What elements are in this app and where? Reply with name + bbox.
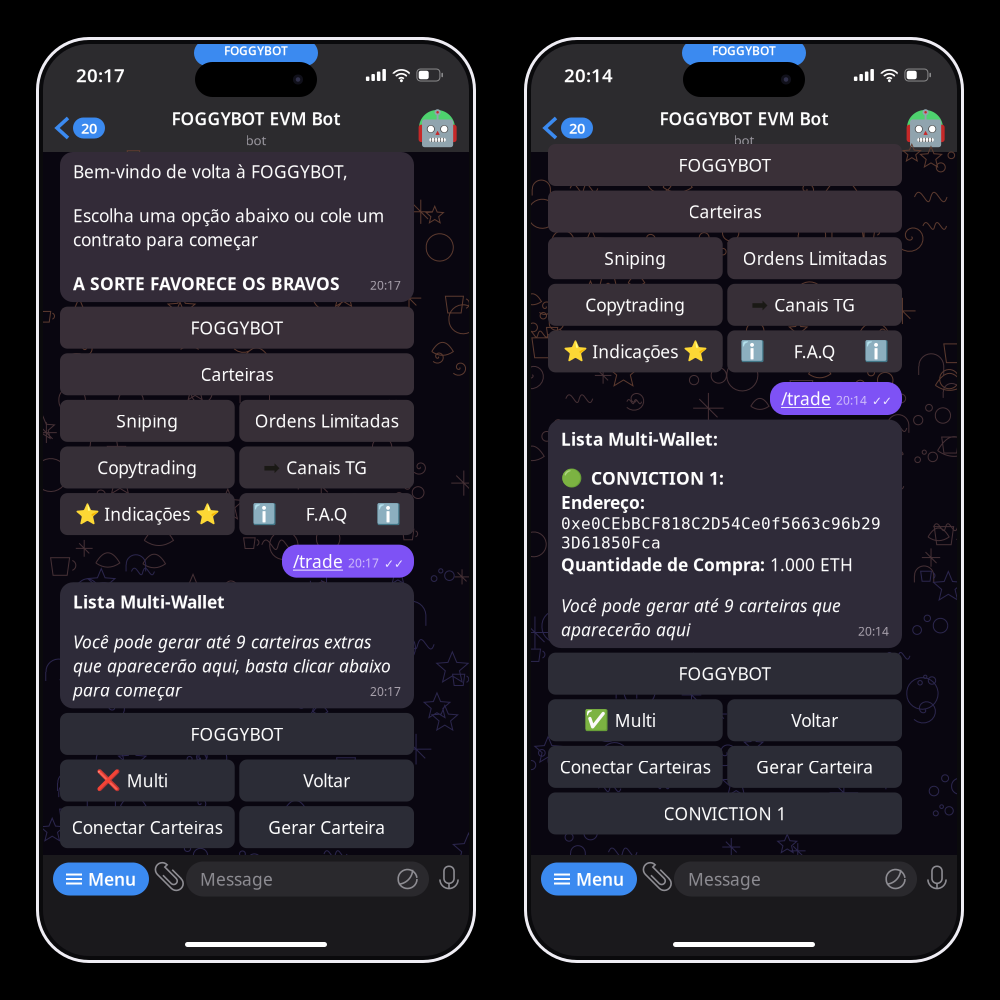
staticText: aparecerão aqui (561, 618, 690, 641)
button[interactable]: Ordens Limitadas (239, 400, 414, 442)
button[interactable]: Attach file (149, 866, 186, 892)
staticText: ℹ️ (376, 503, 401, 525)
button[interactable]: Indicações (60, 493, 235, 535)
staticText: que aparecerão aqui, basta clicar abaixo (73, 654, 391, 677)
button[interactable]: Record voice message (917, 867, 957, 891)
button[interactable]: Canais TG (239, 446, 414, 488)
staticText: ℹ️ (740, 340, 765, 363)
staticText: 1.000 ETH (770, 553, 853, 576)
button[interactable]: Multi (60, 760, 235, 802)
button[interactable]: Sniping (60, 400, 235, 442)
staticText: ✓✓ (872, 394, 892, 408)
staticText: FOGGYBOT EVM Bot (659, 107, 828, 130)
staticText: 3D61850Fca (561, 534, 661, 552)
staticText: Lista Multi-Wallet: (561, 428, 718, 451)
button[interactable]: Conectar Carteiras (60, 806, 235, 848)
staticText: 20:17 (348, 555, 379, 571)
staticText: ⭐ (195, 503, 220, 525)
button[interactable]: Ordens Limitadas (727, 237, 902, 279)
button[interactable]: Bot profile (907, 110, 957, 146)
staticText: ✓✓ (384, 557, 404, 571)
button[interactable]: Menu (43, 862, 149, 895)
staticText: 20:17 (370, 683, 401, 699)
staticText: ℹ️ (252, 503, 277, 525)
button[interactable]: Gerar Carteira (727, 746, 902, 788)
staticText: FOGGYBOT (190, 722, 283, 745)
staticText: Indicações (104, 503, 190, 526)
button[interactable]: FOGGYBOT (548, 653, 902, 695)
staticText: Quantidade de Compra: (561, 553, 765, 576)
button[interactable]: Canais TG (727, 284, 902, 326)
staticText: 🟢 (561, 468, 583, 488)
button[interactable]: F.A.Q (239, 493, 414, 535)
button[interactable]: Schedule message (397, 868, 418, 889)
button[interactable]: 20 (43, 111, 105, 144)
staticText: FOGGYBOT (224, 42, 288, 58)
staticText: 🤖 (415, 108, 458, 148)
staticText: Ordens Limitadas (255, 409, 399, 432)
button[interactable]: FOGGYBOT (60, 307, 414, 349)
staticText: Copytrading (97, 456, 197, 479)
button[interactable]: Schedule message (885, 868, 906, 889)
button[interactable]: Voltar (239, 760, 414, 802)
staticText: FOGGYBOT EVM Bot (171, 107, 340, 130)
staticText: ⭐ (75, 503, 100, 525)
staticText: para começar (73, 678, 182, 701)
button[interactable]: CONVICTION 1 (548, 792, 902, 834)
button[interactable]: Sniping (548, 237, 723, 279)
button[interactable]: Indicações (548, 330, 723, 372)
staticText: 0xe0CEbBCF818C2D54Ce0f5663c96b29 (561, 515, 881, 533)
staticText: Bem-vindo de volta à FOGGYBOT, (73, 160, 348, 183)
button[interactable]: Copytrading (60, 446, 235, 488)
staticText: CONVICTION 1: (591, 467, 724, 490)
staticText: Escolha uma opção abaixo ou cole um (73, 204, 384, 227)
staticText: Você pode gerar até 9 carteiras que (561, 594, 841, 617)
staticText: bot (733, 131, 754, 149)
staticText: FOGGYBOT (712, 42, 776, 58)
button[interactable]: Carteiras (60, 353, 414, 395)
staticText: ⭐ (683, 340, 708, 363)
staticText: Message (200, 867, 273, 890)
staticText: Multi (615, 709, 656, 732)
button[interactable]: Record voice message (429, 867, 469, 891)
staticText: 20:14 (858, 623, 889, 639)
button[interactable]: Carteiras (548, 191, 902, 233)
staticText: FOGGYBOT (678, 153, 771, 176)
staticText: 20:14 (836, 392, 867, 408)
button[interactable]: Conectar Carteiras (548, 746, 723, 788)
button[interactable]: FOGGYBOT (548, 144, 902, 186)
button[interactable]: Gerar Carteira (239, 806, 414, 848)
staticText: contrato para começar (73, 228, 258, 251)
staticText: Carteiras (688, 200, 761, 223)
staticText: 20:17 (370, 277, 401, 293)
staticText: Sniping (116, 409, 178, 432)
staticText: FOGGYBOT (190, 316, 283, 339)
staticText: FOGGYBOT (678, 662, 771, 685)
staticText: Canais TG (774, 293, 855, 316)
staticText: ➡ (751, 293, 768, 316)
button[interactable]: Attach file (637, 866, 674, 892)
staticText: Carteiras (200, 363, 273, 386)
staticText: Voltar (303, 769, 350, 792)
button[interactable]: Menu (531, 862, 637, 895)
button[interactable]: Voltar (727, 699, 902, 741)
staticText: Gerar Carteira (268, 816, 385, 839)
staticText: ➡ (263, 456, 280, 479)
staticText: ❌ (96, 769, 121, 792)
staticText: 20:14 (564, 63, 613, 87)
button[interactable]: 20 (531, 111, 593, 144)
button[interactable]: Bot profile (419, 110, 469, 146)
button[interactable]: FOGGYBOT (60, 713, 414, 755)
button[interactable]: Multi (548, 699, 723, 741)
button[interactable]: F.A.Q (727, 330, 902, 372)
staticText: Multi (127, 769, 168, 792)
staticText: Endereço: (561, 491, 645, 514)
staticText: /trade (293, 550, 343, 573)
staticText: ✅ (584, 709, 609, 732)
staticText: Indicações (592, 340, 678, 363)
staticText: bot (245, 131, 266, 149)
staticText: ℹ️ (864, 340, 889, 363)
button[interactable]: Copytrading (548, 284, 723, 326)
staticText: 20 (569, 118, 585, 138)
staticText: Gerar Carteira (756, 755, 873, 778)
